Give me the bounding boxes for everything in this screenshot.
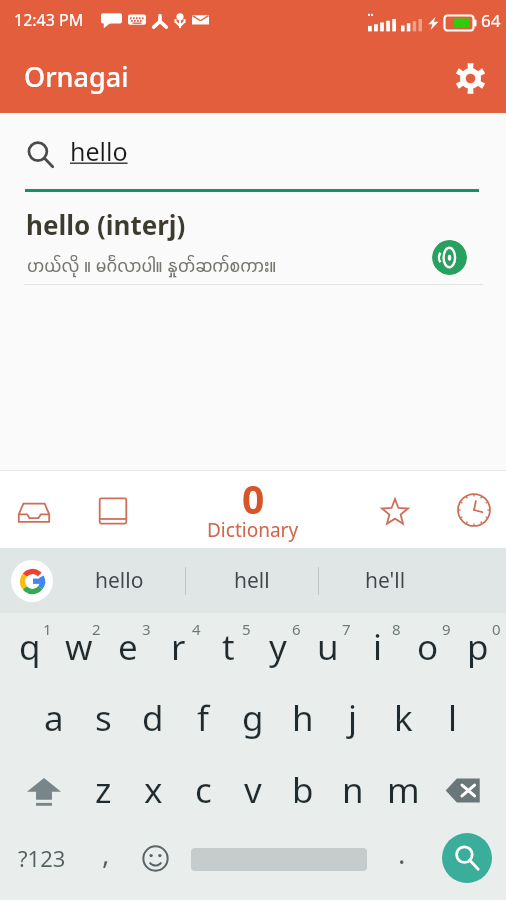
button[interactable]: n: [327, 756, 377, 828]
button[interactable]: Shift: [4, 756, 78, 828]
button[interactable]: ,: [81, 828, 134, 900]
staticText: w: [65, 623, 93, 671]
staticText: ဟယ်လို ။ မင်္ဂလာပါ။ နှုတ်ဆက်စကား။: [27, 253, 276, 278]
button[interactable]: u: [302, 613, 352, 684]
button[interactable]: l: [427, 684, 477, 756]
button[interactable]: m: [377, 756, 427, 828]
staticText: k: [394, 694, 413, 742]
button[interactable]: q: [4, 613, 53, 684]
staticText: 0: [492, 619, 501, 639]
button[interactable]: Inbox: [6, 473, 62, 551]
button[interactable]: e: [102, 613, 152, 684]
button[interactable]: he'll: [319, 548, 451, 613]
button[interactable]: Search: [442, 833, 492, 883]
button[interactable]: h: [277, 684, 327, 756]
staticText: o: [417, 623, 439, 671]
staticText: l: [448, 694, 458, 742]
staticText: 1: [43, 619, 52, 639]
staticText: hello: [70, 134, 128, 168]
staticText: x: [144, 766, 163, 814]
button[interactable]: f: [177, 684, 227, 756]
staticText: f: [197, 694, 210, 742]
button[interactable]: z: [78, 756, 127, 828]
button[interactable]: Pronounce: [432, 240, 467, 275]
staticText: g: [242, 694, 264, 742]
button[interactable]: Emoji: [134, 828, 187, 900]
staticText: d: [142, 694, 164, 742]
staticText: 2: [92, 619, 101, 639]
button[interactable]: d: [127, 684, 177, 756]
staticText: m: [387, 766, 420, 814]
staticText: 64: [481, 9, 501, 32]
button[interactable]: 0: [198, 470, 308, 548]
button[interactable]: g: [227, 684, 277, 756]
staticText: 12:43 PM: [14, 9, 84, 31]
button[interactable]: hell: [186, 548, 318, 613]
staticText: Ornagai: [24, 58, 129, 95]
button[interactable]: w: [53, 613, 102, 684]
staticText: p: [467, 623, 489, 671]
staticText: Dictionary: [207, 517, 299, 542]
staticText: v: [244, 766, 262, 814]
staticText: 5: [242, 619, 251, 639]
staticText: ,: [102, 834, 110, 872]
button[interactable]: .: [373, 828, 426, 900]
staticText: s: [95, 694, 112, 742]
button[interactable]: v: [227, 756, 277, 828]
staticText: he'll: [365, 566, 406, 595]
staticText: e: [118, 623, 138, 671]
staticText: 4: [192, 619, 201, 639]
button[interactable]: History: [446, 471, 502, 549]
button[interactable]: i: [352, 613, 402, 684]
button[interactable]: Google: [11, 560, 53, 602]
staticText: c: [195, 766, 212, 814]
button[interactable]: s: [77, 684, 127, 756]
staticText: 0: [242, 472, 265, 525]
staticText: y: [269, 623, 287, 671]
staticText: 7: [342, 619, 351, 639]
staticText: hello (interj): [26, 207, 186, 242]
staticText: q: [19, 623, 41, 671]
button[interactable]: t: [202, 613, 252, 684]
button[interactable]: a: [28, 684, 77, 756]
button[interactable]: j: [327, 684, 377, 756]
staticText: r: [171, 623, 186, 671]
button[interactable]: Settings: [446, 54, 494, 102]
staticText: 9: [442, 619, 451, 639]
button[interactable]: hello (interj): [0, 205, 506, 295]
staticText: u: [317, 623, 339, 671]
staticText: n: [342, 766, 364, 814]
staticText: z: [95, 766, 112, 814]
button[interactable]: ?123: [0, 828, 81, 900]
button[interactable]: p: [452, 613, 502, 684]
staticText: a: [44, 694, 64, 742]
button[interactable]: x: [127, 756, 177, 828]
button[interactable]: o: [402, 613, 452, 684]
staticText: .: [398, 834, 406, 872]
button[interactable]: b: [277, 756, 327, 828]
button[interactable]: Space: [187, 828, 373, 900]
staticText: hello: [95, 566, 144, 595]
staticText: 8: [392, 619, 401, 639]
staticText: h: [292, 694, 314, 742]
staticText: hell: [234, 566, 270, 595]
staticText: ?123: [18, 843, 66, 873]
button[interactable]: c: [177, 756, 227, 828]
button[interactable]: hello: [53, 548, 185, 613]
staticText: j: [348, 694, 358, 742]
button[interactable]: k: [377, 684, 427, 756]
button[interactable]: Book: [85, 472, 141, 550]
staticText: 6: [292, 619, 301, 639]
button[interactable]: Backspace: [427, 756, 502, 828]
staticText: t: [222, 623, 235, 671]
staticText: b: [292, 766, 314, 814]
staticText: i: [373, 623, 383, 671]
button[interactable]: y: [252, 613, 302, 684]
button[interactable]: r: [152, 613, 202, 684]
button[interactable]: Favourites: [367, 473, 423, 551]
staticText: 3: [142, 619, 151, 639]
